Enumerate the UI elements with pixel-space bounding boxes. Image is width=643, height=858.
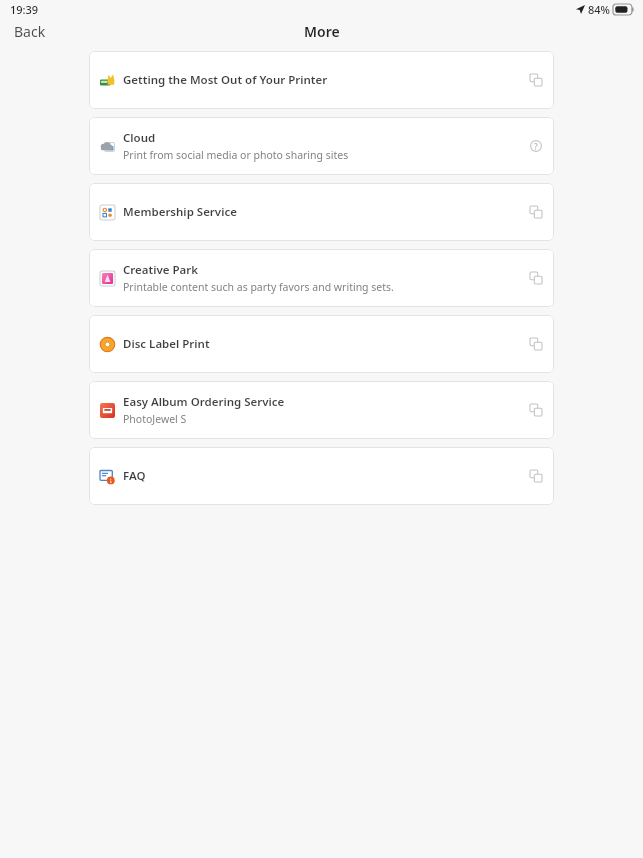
other: Open in new window bbox=[530, 338, 542, 350]
staticText: Printable content such as party favors a… bbox=[123, 280, 394, 294]
staticText: Print from social media or photo sharing… bbox=[123, 148, 349, 162]
staticText: Getting the Most Out of Your Printer bbox=[123, 72, 328, 88]
staticText: Creative Park bbox=[123, 262, 199, 278]
button[interactable]: Back bbox=[0, 18, 60, 44]
staticText: More bbox=[304, 22, 340, 41]
staticText: Cloud bbox=[123, 130, 156, 146]
other: Help bbox=[530, 140, 542, 152]
staticText: Disc Label Print bbox=[123, 336, 210, 352]
other: Open in new window bbox=[530, 470, 542, 482]
button[interactable]: Getting the Most Out of Your Printer bbox=[89, 51, 554, 109]
staticText: FAQ bbox=[123, 468, 146, 484]
other: Open in new window bbox=[530, 404, 542, 416]
other: Open in new window bbox=[530, 74, 542, 86]
button[interactable]: Creative Park bbox=[89, 249, 554, 307]
button[interactable]: FAQ bbox=[89, 447, 554, 505]
other: Open in new window bbox=[530, 272, 542, 284]
staticText: 84% bbox=[588, 2, 610, 17]
staticText: Easy Album Ordering Service bbox=[123, 394, 285, 410]
staticText: Membership Service bbox=[123, 204, 237, 220]
button[interactable]: Easy Album Ordering Service bbox=[89, 381, 554, 439]
button[interactable]: Membership Service bbox=[89, 183, 554, 241]
staticText: Back bbox=[14, 22, 46, 40]
staticText: 19:39 bbox=[10, 2, 39, 17]
other: Open in new window bbox=[530, 206, 542, 218]
button[interactable]: Cloud bbox=[89, 117, 554, 175]
staticText: ? bbox=[534, 141, 538, 152]
button[interactable]: Disc Label Print bbox=[89, 315, 554, 373]
staticText: PhotoJewel S bbox=[123, 412, 187, 426]
